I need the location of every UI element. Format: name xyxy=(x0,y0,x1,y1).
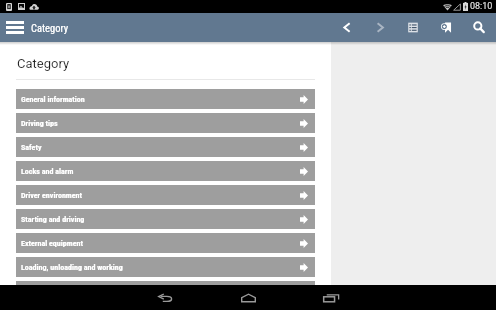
button[interactable]: Safety xyxy=(16,137,315,157)
button[interactable]: Driver environment xyxy=(16,185,315,205)
button[interactable]: Search xyxy=(468,13,490,42)
staticText: Locks and alarm xyxy=(21,167,74,176)
button[interactable]: Home xyxy=(207,285,290,310)
button[interactable]: Add bookmark xyxy=(435,13,457,42)
staticText: Category xyxy=(17,56,70,71)
staticText: Starting and driving xyxy=(21,215,85,224)
staticText: Loading, unloading and working xyxy=(21,263,123,272)
button[interactable]: Forward xyxy=(369,13,391,42)
staticText: General information xyxy=(21,95,85,104)
button[interactable]: Recents xyxy=(290,285,373,310)
button[interactable]: Locks and alarm xyxy=(16,161,315,181)
staticText: Driving tips xyxy=(21,119,58,128)
button[interactable]: Contents xyxy=(402,13,424,42)
staticText: 08:10 xyxy=(470,1,493,12)
staticText: Category xyxy=(31,22,69,34)
button[interactable]: Starting and driving xyxy=(16,209,315,229)
staticText: External equipment xyxy=(21,239,83,248)
staticText: Safety xyxy=(21,143,42,152)
staticText: Driver environment xyxy=(21,191,82,200)
button[interactable]: External equipment xyxy=(16,233,315,253)
button[interactable]: Back xyxy=(336,13,358,42)
button[interactable]: Back xyxy=(124,285,207,310)
button[interactable]: Driving tips xyxy=(16,113,315,133)
button[interactable]: Menu xyxy=(0,13,29,42)
button[interactable]: Loading, unloading and working xyxy=(16,257,315,277)
button[interactable]: General information xyxy=(16,89,315,109)
